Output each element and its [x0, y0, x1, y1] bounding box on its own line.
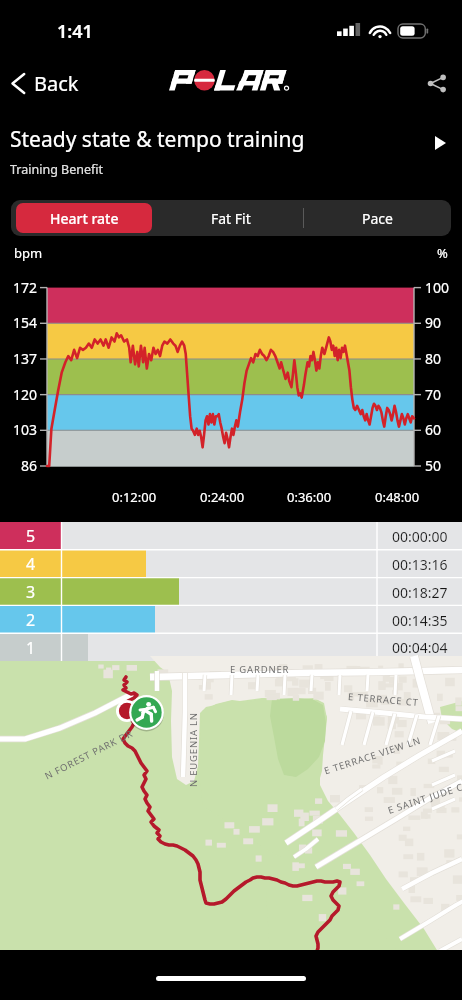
- staticText: 2: [26, 609, 36, 631]
- staticText: 70: [425, 385, 442, 404]
- staticText: 00:00:00: [392, 527, 448, 546]
- staticText: 137: [0, 349, 37, 368]
- staticText: %: [437, 244, 448, 262]
- staticText: 100: [425, 278, 450, 297]
- button[interactable]: Heart rate: [16, 203, 152, 233]
- staticText: 1:41: [57, 19, 93, 44]
- staticText: E GARDNER: [230, 663, 290, 676]
- staticText: E SAINT JUDE CT: [386, 778, 462, 817]
- staticText: Fat Fit: [211, 209, 251, 228]
- staticText: N EUGENIA LN: [187, 712, 200, 787]
- staticText: 90: [425, 313, 442, 332]
- staticText: 0:24:00: [200, 488, 245, 506]
- staticText: 80: [425, 349, 442, 368]
- button[interactable]: Route map: [0, 661, 462, 950]
- staticText: 4: [26, 553, 36, 575]
- staticText: Training Benefit: [10, 161, 104, 178]
- staticText: 3: [26, 581, 36, 603]
- staticText: 0:48:00: [375, 488, 420, 506]
- staticText: Pace: [362, 209, 393, 228]
- staticText: 86: [0, 456, 37, 475]
- staticText: 0:36:00: [287, 488, 332, 506]
- staticText: Heart rate: [50, 209, 119, 228]
- staticText: 103: [0, 420, 37, 439]
- button[interactable]: Pace: [304, 200, 451, 236]
- staticText: 154: [0, 313, 37, 332]
- staticText: 0:12:00: [112, 488, 157, 506]
- staticText: 60: [425, 420, 442, 439]
- staticText: Steady state & tempo training: [10, 125, 305, 154]
- button[interactable]: 1: [0, 634, 462, 661]
- button[interactable]: 4: [0, 550, 462, 578]
- staticText: 172: [0, 278, 37, 297]
- staticText: Back: [34, 70, 79, 97]
- button[interactable]: 5: [0, 522, 462, 550]
- staticText: 120: [0, 385, 37, 404]
- staticText: 1: [26, 637, 36, 659]
- staticText: E TERRACE VIEW LN: [322, 734, 423, 777]
- staticText: 5: [26, 525, 36, 547]
- staticText: N FOREST PARK DR: [42, 726, 136, 783]
- button[interactable]: Share: [412, 61, 462, 106]
- button[interactable]: Fat Fit: [157, 200, 304, 236]
- button[interactable]: 2: [0, 606, 462, 634]
- button[interactable]: Back: [4, 60, 93, 107]
- staticText: 00:18:27: [392, 583, 448, 602]
- staticText: bpm: [14, 244, 43, 262]
- staticText: E TERRACE CT: [348, 690, 419, 709]
- button[interactable]: Play: [419, 125, 462, 161]
- staticText: 00:13:16: [392, 555, 448, 574]
- button[interactable]: Activity type: running: [128, 694, 165, 731]
- staticText: 00:14:35: [392, 611, 448, 630]
- button[interactable]: 3: [0, 578, 462, 606]
- staticText: 50: [425, 456, 442, 475]
- staticText: 00:04:04: [392, 638, 448, 657]
